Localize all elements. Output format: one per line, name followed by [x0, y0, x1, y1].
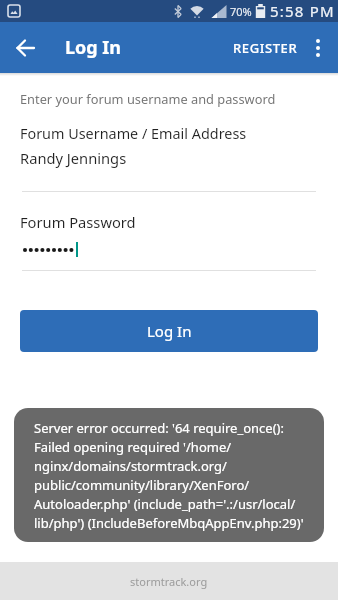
- button[interactable]: [298, 22, 338, 73]
- button[interactable]: stormtrack.org: [0, 562, 338, 600]
- button[interactable]: Forum Password: [0, 212, 338, 271]
- staticText: REGISTER: [233, 39, 298, 57]
- button[interactable]: [0, 22, 51, 73]
- staticText: Forum Password: [20, 212, 136, 232]
- staticText: Enter your forum username and password: [20, 90, 276, 107]
- button[interactable]: Forum Username / Email Address: [0, 124, 338, 192]
- button[interactable]: Log In: [20, 310, 318, 352]
- staticText: 70%: [230, 4, 252, 19]
- staticText: Log In: [65, 35, 122, 60]
- staticText: Log In: [147, 321, 192, 341]
- staticText: stormtrack.org: [130, 574, 208, 589]
- staticText: 5:58 PM: [270, 1, 335, 21]
- staticText: Randy Jennings: [20, 148, 127, 168]
- staticText: Server error occurred: '64 require_once(…: [34, 419, 304, 532]
- staticText: Forum Username / Email Address: [20, 124, 247, 144]
- button[interactable]: REGISTER: [233, 22, 298, 73]
